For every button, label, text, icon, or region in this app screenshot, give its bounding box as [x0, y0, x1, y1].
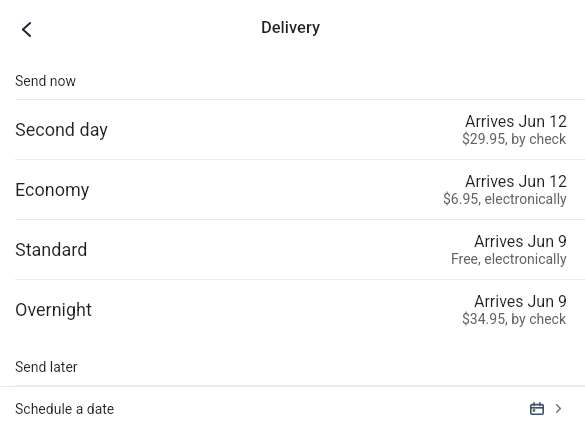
staticText: Economy: [15, 179, 90, 200]
staticText: Free, electronically: [451, 251, 567, 267]
staticText: Send later: [15, 359, 78, 375]
staticText: $29.95, by check: [462, 131, 567, 147]
button[interactable]: Overnight: [0, 279, 585, 339]
staticText: Standard: [15, 239, 88, 260]
staticText: Arrives Jun 9: [474, 232, 567, 251]
staticText: Second day: [15, 119, 108, 140]
staticText: Send now: [15, 73, 77, 89]
staticText: Schedule a date: [15, 401, 115, 417]
staticText: Arrives Jun 12: [465, 172, 567, 191]
button[interactable]: Second day: [0, 99, 585, 159]
staticText: $6.95, electronically: [443, 191, 567, 207]
staticText: Arrives Jun 9: [474, 292, 567, 311]
staticText: Overnight: [15, 299, 92, 320]
button[interactable]: Standard: [0, 219, 585, 279]
staticText: Arrives Jun 12: [465, 112, 567, 131]
staticText: Delivery: [261, 18, 320, 37]
button[interactable]: Back: [5, 8, 47, 50]
button[interactable]: Economy: [0, 159, 585, 219]
staticText: $34.95, by check: [462, 311, 567, 327]
button[interactable]: Schedule a date: [0, 387, 585, 430]
